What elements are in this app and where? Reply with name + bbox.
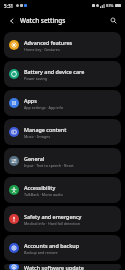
staticText: Input · Text to speech · Reset [24, 163, 74, 168]
staticText: Advanced features [24, 39, 73, 46]
staticText: Medical info · Hard fall detection [24, 221, 81, 226]
staticText: Manage content [24, 126, 67, 133]
button[interactable]: Accounts and backup [4, 235, 121, 261]
staticText: Home key · Gestures [24, 47, 60, 52]
staticText: Music · Images [24, 134, 50, 139]
staticText: Power saving [24, 76, 48, 81]
staticText: Accessibility [24, 184, 56, 191]
staticText: Accounts and backup [24, 242, 79, 249]
staticText: 83% [106, 3, 114, 8]
button[interactable]: Advanced features [4, 32, 121, 58]
staticText: App settings · App info [24, 105, 64, 110]
button[interactable]: Safety and emergency [4, 206, 121, 232]
button[interactable]: Back [5, 14, 18, 27]
staticText: Backup and restore [24, 250, 58, 255]
staticText: Watch software update [24, 264, 84, 270]
staticText: Battery and device care [24, 68, 85, 75]
button[interactable]: Battery and device care [4, 61, 121, 87]
button[interactable]: General [4, 148, 121, 174]
staticText: TalkBack · Mono audio [24, 192, 63, 197]
staticText: 5:31 [4, 3, 14, 9]
button[interactable]: Manage content [4, 119, 121, 145]
staticText: Apps [24, 97, 37, 104]
staticText: Safety and emergency [24, 213, 82, 220]
staticText: General [24, 155, 45, 162]
button[interactable]: Search [107, 14, 120, 27]
button[interactable]: Watch software update [4, 264, 121, 270]
button[interactable]: Apps [4, 90, 121, 116]
staticText: Watch settings [20, 16, 66, 25]
button[interactable]: Accessibility [4, 177, 121, 203]
